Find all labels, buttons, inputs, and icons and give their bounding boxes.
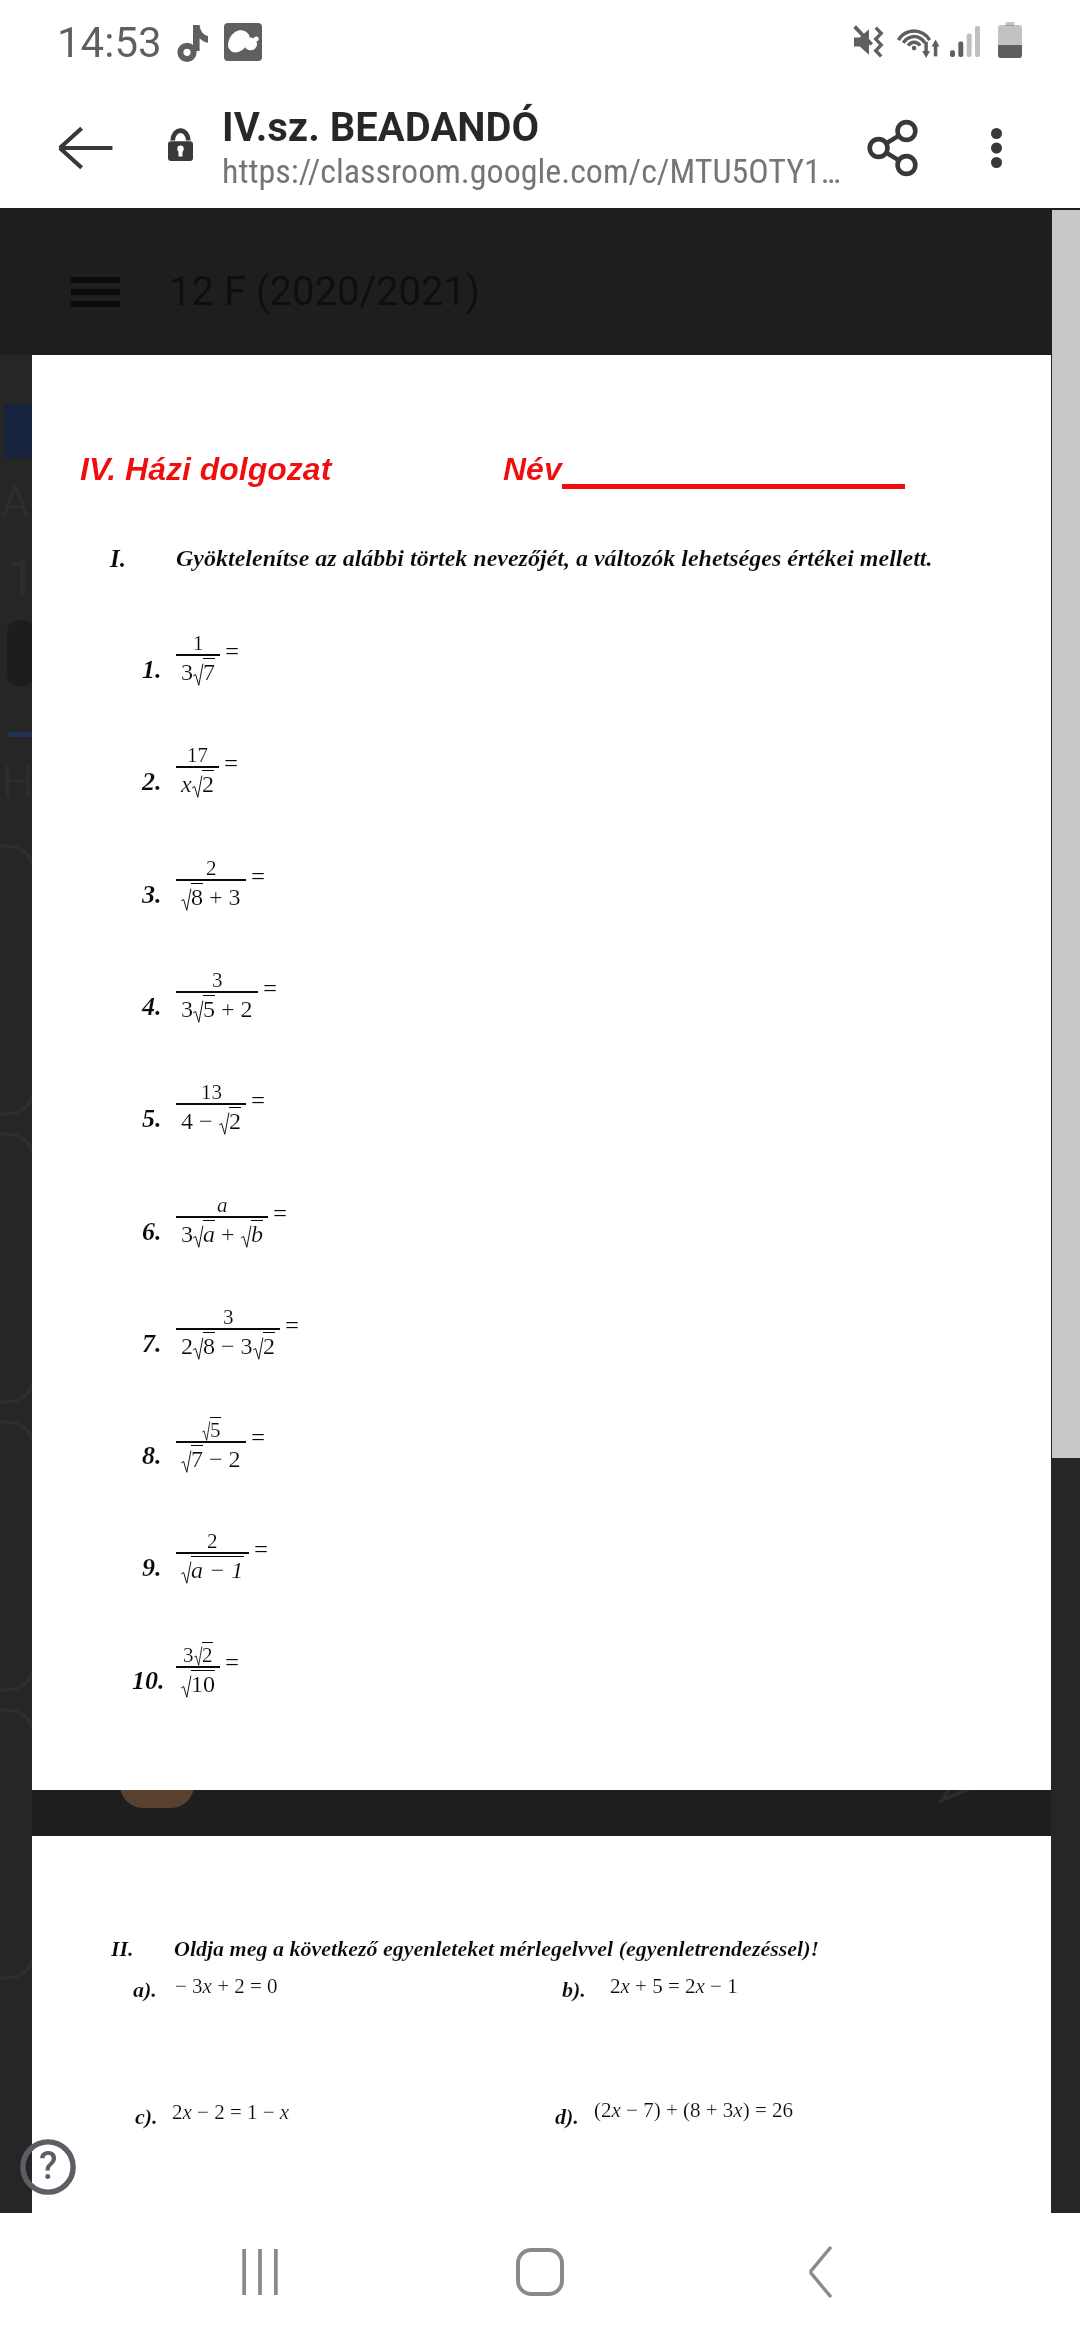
staticText: (2x − 7) + (8 + 3x) = 26 <box>594 2098 793 2121</box>
staticText: 2. <box>142 767 162 796</box>
staticText: 2 <box>207 1529 218 1552</box>
button[interactable]: Home <box>480 2212 600 2332</box>
staticText: − 3 <box>215 1333 253 1360</box>
button[interactable]: Recents <box>200 2212 320 2332</box>
staticText: 2 <box>202 1643 213 1666</box>
staticText: = <box>254 1536 269 1564</box>
staticText: 1. <box>142 655 162 684</box>
staticText: Név <box>503 451 562 487</box>
button[interactable]: More options <box>943 95 1049 201</box>
staticText: I. <box>110 545 126 573</box>
staticText: IV. Házi dolgozat <box>80 451 332 487</box>
staticText: 5. <box>142 1104 162 1133</box>
staticText: c). <box>135 2104 158 2128</box>
staticText: + 2 <box>215 996 253 1023</box>
staticText: 8 <box>203 1333 215 1360</box>
staticText: 2 <box>229 1108 241 1135</box>
staticText: 8. <box>142 1441 162 1470</box>
staticText: 6. <box>142 1217 162 1246</box>
staticText: 17 <box>187 743 208 766</box>
staticText: 2 <box>202 771 214 798</box>
staticText: 3 <box>181 996 193 1023</box>
staticText: 8 <box>191 884 203 911</box>
staticText: = <box>251 863 266 891</box>
staticText: IV.sz. BEADANDÓ <box>222 104 540 151</box>
staticText: 3 <box>212 968 223 991</box>
staticText: a <box>217 1193 228 1216</box>
staticText: 3 <box>223 1305 234 1328</box>
staticText: II. <box>111 1936 134 1960</box>
staticText: − 2 <box>203 1446 241 1473</box>
staticText: 9. <box>142 1553 162 1582</box>
staticText: x <box>181 771 192 798</box>
staticText: 3 <box>181 659 193 686</box>
staticText: 7 <box>191 1446 203 1473</box>
staticText: 1 <box>193 631 204 654</box>
staticText: b). <box>562 1977 586 2001</box>
button[interactable]: Help <box>21 2140 75 2194</box>
staticText: 2x + 5 = 2x − 1 <box>610 1974 738 1997</box>
staticText: = <box>263 975 278 1003</box>
staticText: H <box>2 756 34 808</box>
staticText: 14:53 <box>57 18 162 67</box>
staticText: = <box>225 1649 240 1677</box>
staticText: 13 <box>201 1080 222 1103</box>
staticText: = <box>273 1200 288 1228</box>
staticText: = <box>224 750 239 778</box>
staticText: 2 <box>206 856 217 879</box>
staticText: 3. <box>142 880 162 909</box>
staticText: a − 1 <box>191 1557 244 1584</box>
staticText: https://classroom.google.com/c/MTU5OTY1… <box>222 151 841 191</box>
staticText: a). <box>133 1977 157 2001</box>
staticText: 2x − 2 = 1 − x <box>172 2100 290 2123</box>
button[interactable]: Back <box>30 93 140 203</box>
staticText: 2 <box>263 1333 275 1360</box>
staticText: Oldja meg a következő egyenleteket mérle… <box>174 1936 820 1960</box>
staticText: = <box>251 1087 266 1115</box>
staticText: 12 F (2020/2021) <box>169 268 480 315</box>
staticText: b <box>251 1221 263 1248</box>
staticText: − 3x + 2 = 0 <box>175 1974 278 1997</box>
staticText: d). <box>555 2104 579 2128</box>
staticText: 3 <box>181 1221 193 1248</box>
staticText: a <box>203 1221 215 1248</box>
button[interactable]: Back <box>760 2212 880 2332</box>
staticText: 4 − <box>181 1108 219 1135</box>
button[interactable]: Menu <box>41 238 149 346</box>
staticText: 5 <box>210 1418 221 1441</box>
staticText: + <box>215 1221 241 1248</box>
staticText: 3 <box>183 1643 194 1666</box>
button[interactable]: Share <box>840 95 946 201</box>
staticText: = <box>225 638 240 666</box>
staticText: = <box>251 1424 266 1452</box>
staticText: 10. <box>132 1666 165 1695</box>
staticText: Gyöktelenítse az alábbi törtek nevezőjét… <box>176 545 933 572</box>
staticText: 1 <box>7 548 36 607</box>
staticText: 7 <box>203 659 215 686</box>
staticText: 2 <box>181 1333 193 1360</box>
staticText: 10 <box>191 1671 215 1698</box>
staticText: 4. <box>142 992 162 1021</box>
staticText: 7. <box>142 1329 162 1358</box>
staticText: 5 <box>203 996 215 1023</box>
staticText: = <box>285 1312 300 1340</box>
staticText: + 3 <box>203 884 241 911</box>
staticText: ? <box>39 2144 58 2189</box>
